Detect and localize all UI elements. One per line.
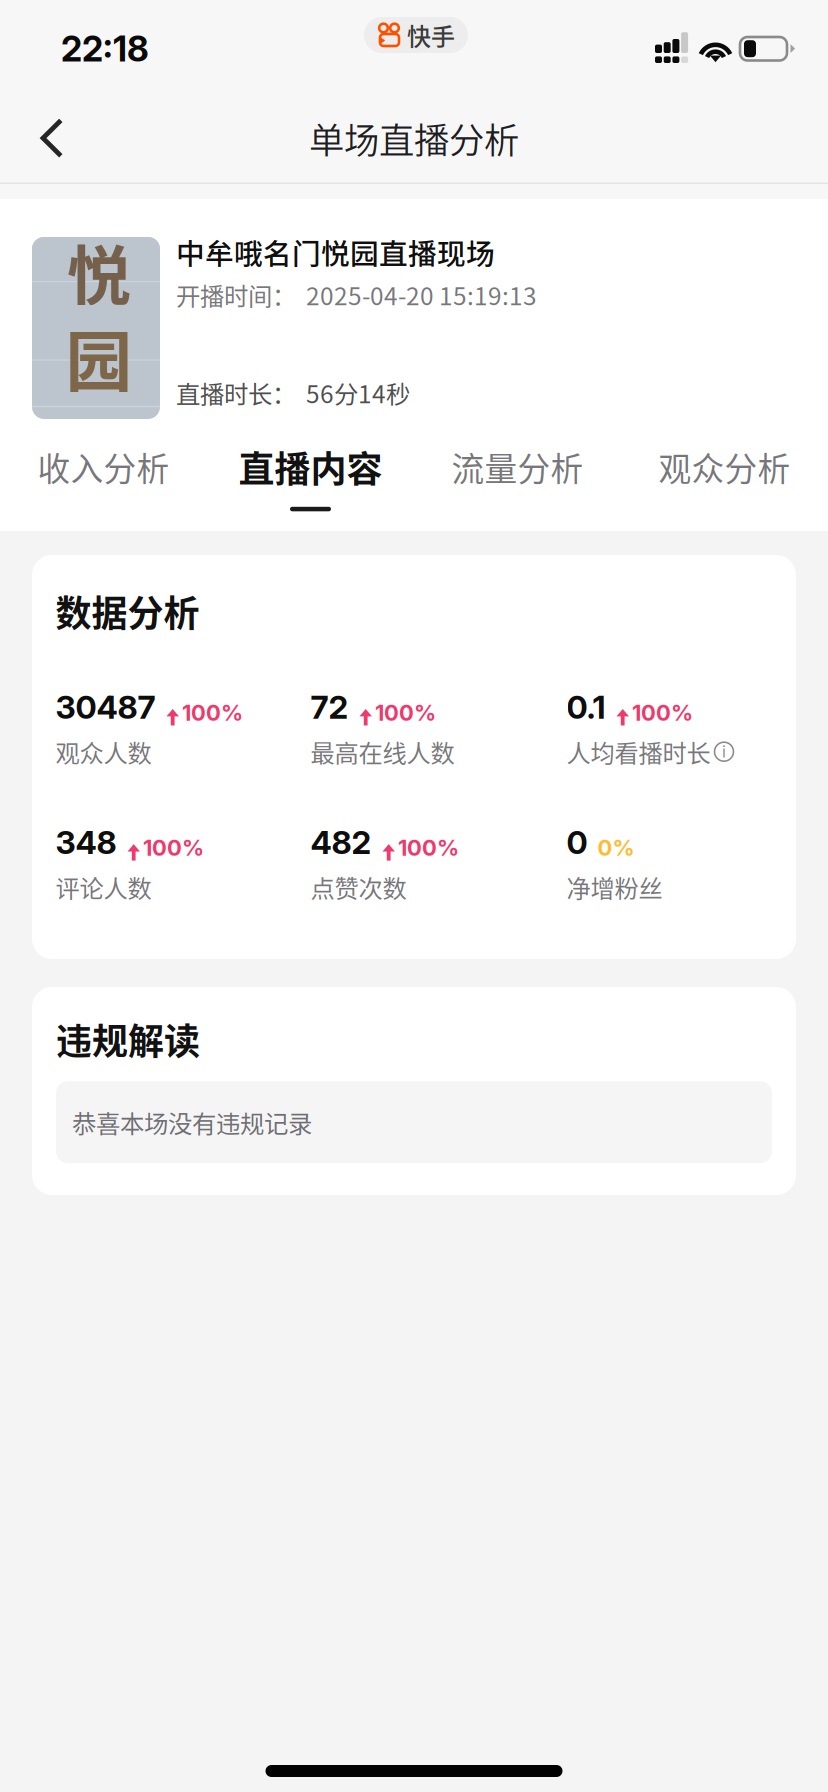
staticText: i <box>722 742 726 761</box>
staticText: 收入分析 <box>37 443 169 490</box>
staticText: 流量分析 <box>451 443 583 490</box>
button[interactable]: 观众分析 <box>621 425 828 531</box>
staticText: 悦 <box>67 225 131 317</box>
staticText: 点赞次数 <box>310 869 406 904</box>
staticText: 恭喜本场没有违规记录 <box>72 1104 312 1140</box>
staticText: 违规解读 <box>56 1013 200 1065</box>
staticText: 单场直播分析 <box>309 112 519 164</box>
staticText: 开播时间： 2025-04-20 15:19:13 <box>176 277 537 312</box>
staticText: 0 <box>566 823 587 862</box>
staticText: 园 <box>65 309 132 405</box>
staticText: 数据分析 <box>55 585 199 637</box>
staticText: 100% <box>632 699 693 726</box>
staticText: 72 <box>310 688 348 726</box>
staticText: 22:18 <box>61 28 149 70</box>
button[interactable]: 收入分析 <box>0 425 207 531</box>
staticText: 30487 <box>55 688 155 726</box>
button[interactable]: Back <box>10 92 94 184</box>
staticText: 100% <box>143 834 204 861</box>
staticText: 0% <box>597 834 634 861</box>
staticText: 中牟哦名门悦园直播现场 <box>176 231 495 273</box>
button[interactable]: 流量分析 <box>414 425 621 531</box>
staticText: 100% <box>398 834 459 861</box>
staticText: 观众分析 <box>658 443 790 490</box>
staticText: 评论人数 <box>55 869 151 904</box>
staticText: 0.1 <box>566 688 605 726</box>
staticText: 快手 <box>407 18 455 52</box>
staticText: 人均看播时长 <box>566 734 710 769</box>
staticText: 净增粉丝 <box>566 869 662 904</box>
staticText: 100% <box>182 699 243 726</box>
staticText: 482 <box>310 823 371 862</box>
staticText: 直播内容 <box>238 441 382 493</box>
staticText: 观众人数 <box>55 734 151 769</box>
staticText: 直播时长： 56分14秒 <box>176 375 410 410</box>
staticText: 100% <box>375 699 436 726</box>
staticText: 最高在线人数 <box>310 734 454 769</box>
button[interactable]: 直播内容 <box>207 425 414 531</box>
staticText: 348 <box>55 823 116 862</box>
